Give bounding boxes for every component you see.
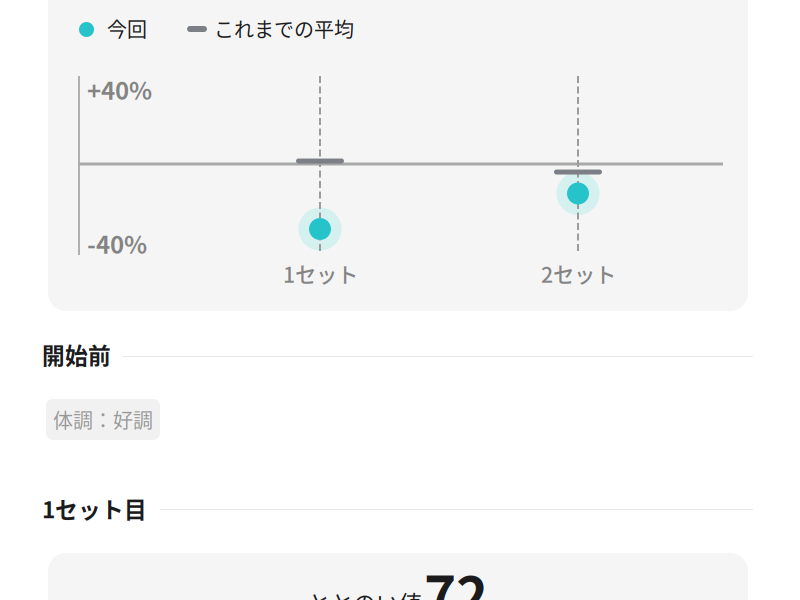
staticText: 開始前	[42, 338, 111, 371]
staticText: +40%	[87, 72, 152, 107]
staticText: 1セット目	[42, 492, 147, 525]
staticText: 1セット	[283, 258, 358, 289]
staticText: 体調：好調	[53, 405, 153, 434]
button[interactable]: 体調：好調	[46, 399, 160, 440]
staticText: 72	[424, 553, 488, 600]
staticText: 2セット	[541, 258, 616, 289]
staticText: 今回	[107, 14, 147, 43]
staticText: これまでの平均	[214, 14, 354, 43]
staticText: -40%	[87, 226, 147, 261]
staticText: ととのい値	[308, 586, 422, 600]
